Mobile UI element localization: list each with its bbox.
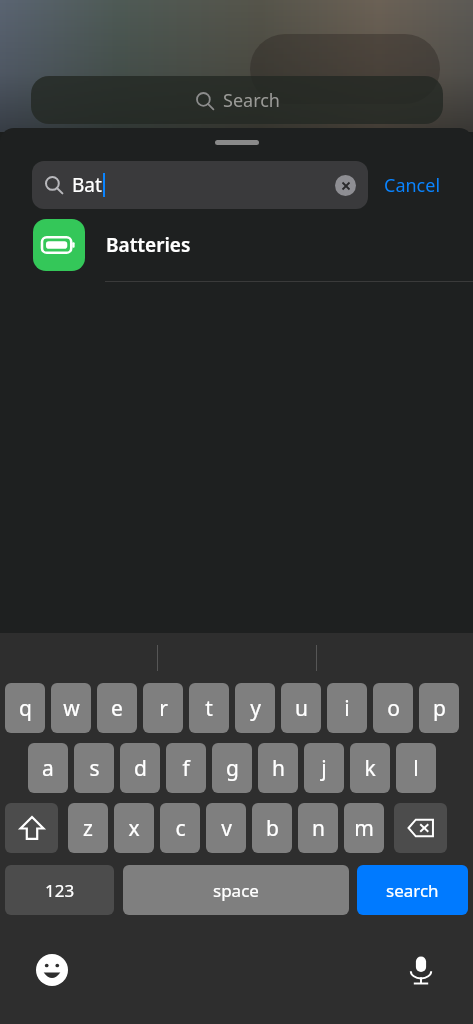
staticText: t: [205, 694, 213, 723]
staticText: i: [344, 694, 350, 723]
staticText: c: [175, 814, 186, 843]
staticText: e: [111, 694, 123, 723]
staticText: s: [89, 754, 100, 783]
staticText: Cancel: [384, 173, 441, 198]
staticText: d: [134, 754, 147, 783]
button[interactable]: 123: [5, 865, 114, 915]
button[interactable]: w: [51, 683, 91, 733]
staticText: k: [364, 754, 376, 783]
staticText: j: [321, 754, 327, 783]
staticText: f: [182, 754, 190, 783]
button[interactable]: l: [396, 743, 436, 793]
button[interactable]: Cancel: [378, 167, 447, 204]
button[interactable]: p: [419, 683, 459, 733]
button[interactable]: n: [298, 803, 338, 853]
button[interactable]: t: [189, 683, 229, 733]
staticText: space: [213, 879, 259, 902]
button[interactable]: u: [281, 683, 321, 733]
staticText: r: [159, 694, 168, 723]
button[interactable]: s: [74, 743, 114, 793]
staticText: search: [386, 879, 439, 902]
staticText: h: [272, 754, 285, 783]
button[interactable]: v: [206, 803, 246, 853]
button[interactable]: search: [357, 865, 468, 915]
button[interactable]: e: [97, 683, 137, 733]
staticText: Search: [223, 88, 280, 113]
button[interactable]: Emoji: [30, 948, 74, 992]
button[interactable]: q: [5, 683, 45, 733]
button[interactable]: z: [68, 803, 108, 853]
button[interactable]: m: [344, 803, 384, 853]
staticText: g: [226, 754, 239, 783]
staticText: 123: [45, 879, 75, 902]
button[interactable]: k: [350, 743, 390, 793]
button[interactable]: space: [123, 865, 349, 915]
button[interactable]: j: [304, 743, 344, 793]
button[interactable]: y: [235, 683, 275, 733]
staticText: a: [42, 754, 54, 783]
staticText: u: [295, 694, 308, 723]
button[interactable]: Backspace: [394, 803, 447, 853]
staticText: m: [354, 814, 374, 843]
staticText: n: [312, 814, 325, 843]
button[interactable]: Shift: [5, 803, 58, 853]
staticText: x: [128, 814, 140, 843]
button[interactable]: b: [252, 803, 292, 853]
button[interactable]: o: [373, 683, 413, 733]
button[interactable]: Search: [31, 76, 443, 124]
button[interactable]: x: [114, 803, 154, 853]
staticText: v: [221, 814, 232, 843]
button[interactable]: a: [28, 743, 68, 793]
button[interactable]: Clear text: [335, 175, 356, 196]
button[interactable]: r: [143, 683, 183, 733]
button[interactable]: g: [212, 743, 252, 793]
button[interactable]: c: [160, 803, 200, 853]
button[interactable]: f: [166, 743, 206, 793]
staticText: o: [387, 694, 400, 723]
button[interactable]: Batteries: [0, 209, 473, 281]
button[interactable]: h: [258, 743, 298, 793]
staticText: y: [250, 694, 261, 723]
button[interactable]: Bat: [32, 161, 368, 209]
staticText: z: [83, 814, 93, 843]
staticText: l: [413, 754, 419, 783]
staticText: w: [63, 694, 80, 723]
button[interactable]: i: [327, 683, 367, 733]
staticText: p: [433, 694, 446, 723]
staticText: q: [19, 694, 32, 723]
staticText: Bat: [72, 172, 102, 198]
button[interactable]: Dictation: [399, 948, 443, 992]
staticText: b: [266, 814, 279, 843]
staticText: Batteries: [106, 232, 191, 258]
button[interactable]: d: [120, 743, 160, 793]
